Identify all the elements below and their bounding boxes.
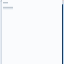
button[interactable]: Open navigation menu: [0, 0, 2, 2]
